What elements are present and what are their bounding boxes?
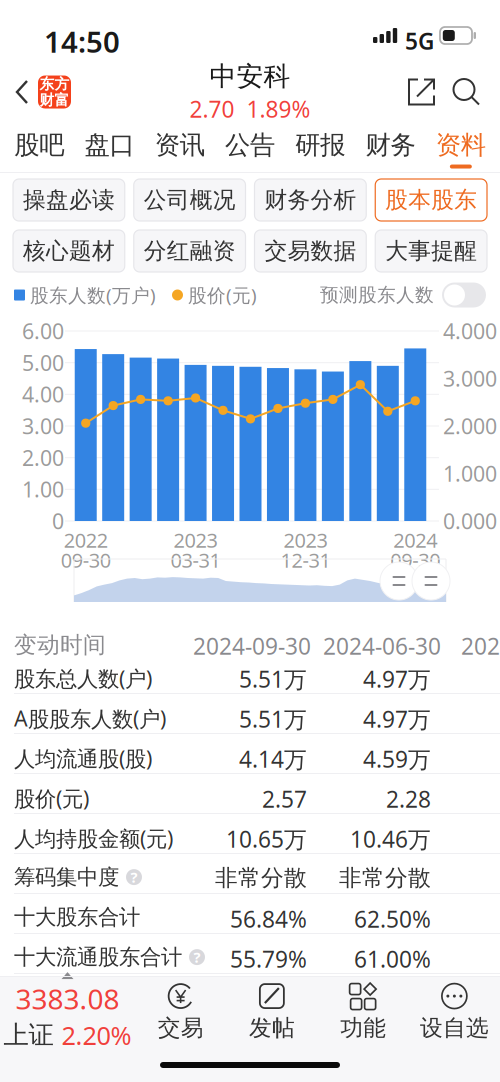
- button[interactable]: 功能: [317, 980, 409, 1044]
- button[interactable]: 分红融资: [134, 230, 246, 272]
- staticText: 变动时间: [14, 631, 106, 659]
- button[interactable]: 财务分析: [254, 179, 366, 221]
- staticText: 股吧: [14, 129, 64, 160]
- staticText: 发帖: [249, 1014, 295, 1042]
- staticText: 2.20%: [61, 1018, 131, 1052]
- button[interactable]: 预测股东人数: [442, 282, 486, 307]
- staticText: 12-31: [280, 547, 330, 573]
- staticText: 202: [461, 631, 500, 661]
- staticText: 股本股东: [385, 186, 477, 214]
- staticText: 公告: [225, 129, 275, 160]
- staticText: 61.00%: [354, 944, 431, 974]
- staticText: 4.14万: [239, 744, 307, 774]
- staticText: 1.000: [443, 459, 497, 488]
- staticText: 股价(元): [188, 283, 257, 307]
- button[interactable]: 公告: [215, 125, 285, 173]
- staticText: 2024-06-30: [323, 631, 441, 661]
- button[interactable]: 股吧: [4, 125, 74, 173]
- button[interactable]: 交易: [135, 980, 226, 1044]
- staticText: 5G: [405, 26, 434, 56]
- staticText: 人均流通股(股): [14, 744, 152, 772]
- staticText: 设自选: [420, 1014, 489, 1042]
- button[interactable]: 股本股东: [375, 179, 487, 221]
- staticText: 功能: [340, 1014, 386, 1042]
- staticText: 资料: [436, 129, 486, 160]
- staticText: 财富: [39, 91, 69, 109]
- staticText: 交易数据: [264, 237, 356, 265]
- staticText: 4.97万: [363, 664, 431, 694]
- button[interactable]: 资讯: [145, 125, 215, 173]
- staticText: 10.46万: [350, 824, 431, 854]
- staticText: 十大股东合计: [14, 904, 140, 930]
- staticText: 东方: [39, 75, 69, 93]
- button[interactable]: 财务: [355, 125, 426, 173]
- staticText: 09-30: [61, 547, 111, 573]
- staticText: 14:50: [44, 22, 120, 61]
- button[interactable]: 核心题材: [13, 230, 125, 272]
- staticText: 股东总人数(户): [14, 664, 152, 692]
- staticText: 55.79%: [230, 944, 307, 974]
- staticText: 2.000: [443, 412, 497, 440]
- staticText: 公司概况: [144, 186, 236, 214]
- staticText: 1.00: [22, 475, 64, 503]
- staticText: 研报: [295, 129, 345, 160]
- staticText: 财务分析: [264, 186, 356, 214]
- button[interactable]: 盘口: [74, 125, 145, 173]
- button[interactable]: 上证指数: [0, 977, 135, 1047]
- staticText: 09-30: [390, 547, 440, 573]
- staticText: 6.00: [22, 317, 64, 345]
- staticText: ?: [193, 947, 200, 967]
- staticText: 核心题材: [23, 237, 115, 265]
- staticText: 股东人数(万户): [30, 283, 156, 307]
- staticText: 交易: [158, 1014, 204, 1042]
- button[interactable]: 设自选: [409, 980, 500, 1044]
- staticText: 非常分散: [215, 864, 307, 892]
- staticText: 4.00: [22, 380, 64, 408]
- staticText: 3383.08: [15, 980, 119, 1017]
- staticText: 4.59万: [363, 744, 431, 774]
- button[interactable]: 操盘必读: [13, 179, 125, 221]
- button[interactable]: Range handle: [380, 562, 418, 600]
- staticText: 预测股东人数: [320, 283, 434, 306]
- staticText: 62.50%: [354, 904, 431, 934]
- staticText: 4.97万: [363, 704, 431, 734]
- staticText: 中安科: [209, 60, 290, 93]
- staticText: A股股东人数(户): [14, 704, 166, 732]
- staticText: 人均持股金额(元): [14, 824, 173, 852]
- staticText: 操盘必读: [23, 186, 115, 214]
- staticText: 上证: [3, 1019, 53, 1051]
- staticText: 2024-09-30: [193, 631, 311, 661]
- staticText: 2022: [64, 527, 108, 553]
- staticText: 5.51万: [239, 704, 307, 734]
- button[interactable]: Back: [0, 64, 77, 120]
- button[interactable]: Range handle: [412, 562, 450, 600]
- staticText: 筹码集中度: [14, 864, 119, 890]
- button[interactable]: Share: [400, 67, 444, 117]
- staticText: 10.65万: [226, 824, 307, 854]
- staticText: 股价(元): [14, 784, 89, 812]
- button[interactable]: 大事提醒: [375, 230, 487, 272]
- staticText: ?: [130, 867, 137, 887]
- staticText: 分红融资: [144, 237, 236, 265]
- button[interactable]: Search: [444, 67, 488, 117]
- staticText: 2023: [283, 527, 327, 553]
- staticText: 3.00: [22, 412, 64, 440]
- staticText: 2.57: [262, 784, 307, 814]
- button[interactable]: 发帖: [226, 980, 317, 1044]
- staticText: 3.000: [443, 364, 497, 393]
- staticText: 2.28: [386, 784, 431, 814]
- staticText: 0.000: [443, 507, 497, 535]
- staticText: 2023: [174, 527, 218, 553]
- staticText: 非常分散: [339, 864, 431, 892]
- button[interactable]: 资料: [426, 125, 496, 173]
- staticText: 2.70 1.89%: [189, 94, 310, 124]
- staticText: 0: [52, 507, 64, 535]
- button[interactable]: 交易数据: [254, 230, 366, 272]
- staticText: 5.00: [22, 348, 64, 377]
- staticText: 财务: [366, 129, 416, 160]
- staticText: 资讯: [155, 129, 205, 160]
- staticText: 5.51万: [239, 664, 307, 694]
- button[interactable]: 公司概况: [134, 179, 246, 221]
- staticText: 盘口: [84, 129, 134, 160]
- button[interactable]: 研报: [285, 125, 355, 173]
